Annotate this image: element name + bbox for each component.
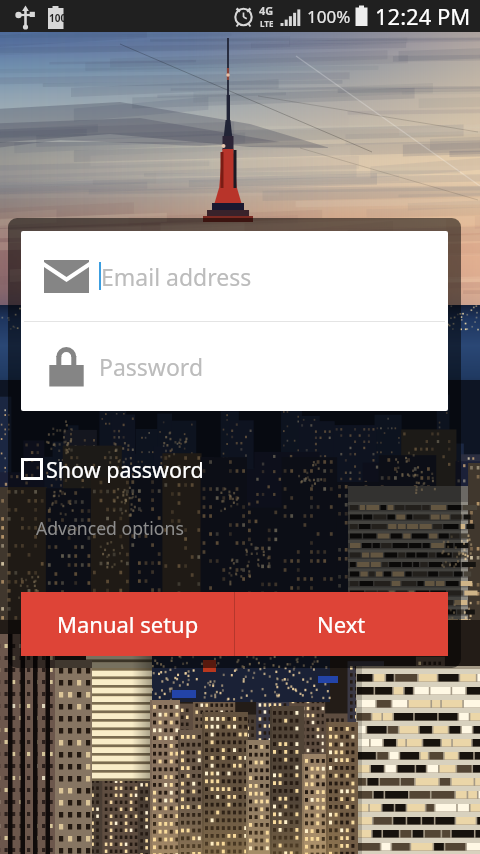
staticText: 100%	[307, 5, 351, 28]
button[interactable]: Advanced options	[30, 512, 190, 544]
button[interactable]: Next	[235, 592, 448, 656]
button[interactable]: Show password	[18, 450, 204, 488]
staticText: Show password	[46, 455, 204, 484]
staticText: Manual setup	[57, 609, 199, 639]
staticText: Email address	[101, 261, 252, 292]
button[interactable]: Manual setup	[21, 592, 234, 656]
staticText: LTE	[260, 18, 274, 29]
staticText: Password	[99, 351, 204, 382]
button[interactable]: Email address	[21, 231, 448, 321]
staticText: 100	[49, 11, 67, 25]
staticText: Advanced options	[36, 516, 184, 540]
staticText: 12:24 PM	[375, 1, 471, 31]
staticText: 4G	[259, 3, 274, 18]
staticText: Next	[317, 609, 366, 639]
button[interactable]: Password	[21, 322, 448, 411]
